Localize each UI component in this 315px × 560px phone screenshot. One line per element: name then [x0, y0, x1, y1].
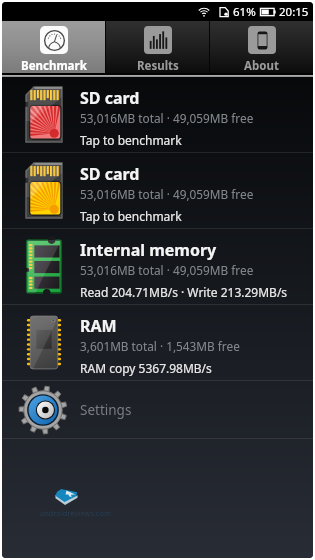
- staticText: Benchmark: [21, 58, 87, 74]
- staticText: About: [244, 58, 279, 74]
- staticText: Read 204.71MB/s · Write 213.29MB/s: [80, 284, 288, 300]
- staticText: androidreviews.com: [40, 508, 111, 518]
- button[interactable]: RAM: [2, 305, 313, 380]
- button[interactable]: SD card: [2, 77, 313, 152]
- staticText: SD card: [80, 163, 140, 185]
- staticText: 61%: [233, 4, 256, 20]
- button[interactable]: Internal memory: [2, 229, 313, 304]
- staticText: 53,016MB total · 49,059MB free: [80, 110, 254, 126]
- button[interactable]: Results: [106, 21, 209, 73]
- button[interactable]: Benchmark: [2, 21, 105, 73]
- staticText: RAM: [80, 315, 117, 337]
- staticText: 20:15: [279, 4, 309, 20]
- staticText: RAM copy 5367.98MB/s: [80, 360, 212, 376]
- staticText: 53,016MB total · 49,059MB free: [80, 262, 254, 278]
- button[interactable]: Settings: [2, 381, 313, 438]
- staticText: Tap to benchmark: [80, 132, 182, 148]
- staticText: Settings: [80, 401, 132, 419]
- button[interactable]: About: [210, 21, 313, 73]
- staticText: Tap to benchmark: [80, 208, 182, 224]
- button[interactable]: SD card: [2, 153, 313, 228]
- staticText: Internal memory: [80, 239, 217, 261]
- staticText: 53,016MB total · 49,059MB free: [80, 186, 254, 202]
- staticText: Results: [137, 58, 179, 74]
- staticText: 3,601MB total · 1,543MB free: [80, 338, 240, 354]
- staticText: SD card: [80, 87, 140, 109]
